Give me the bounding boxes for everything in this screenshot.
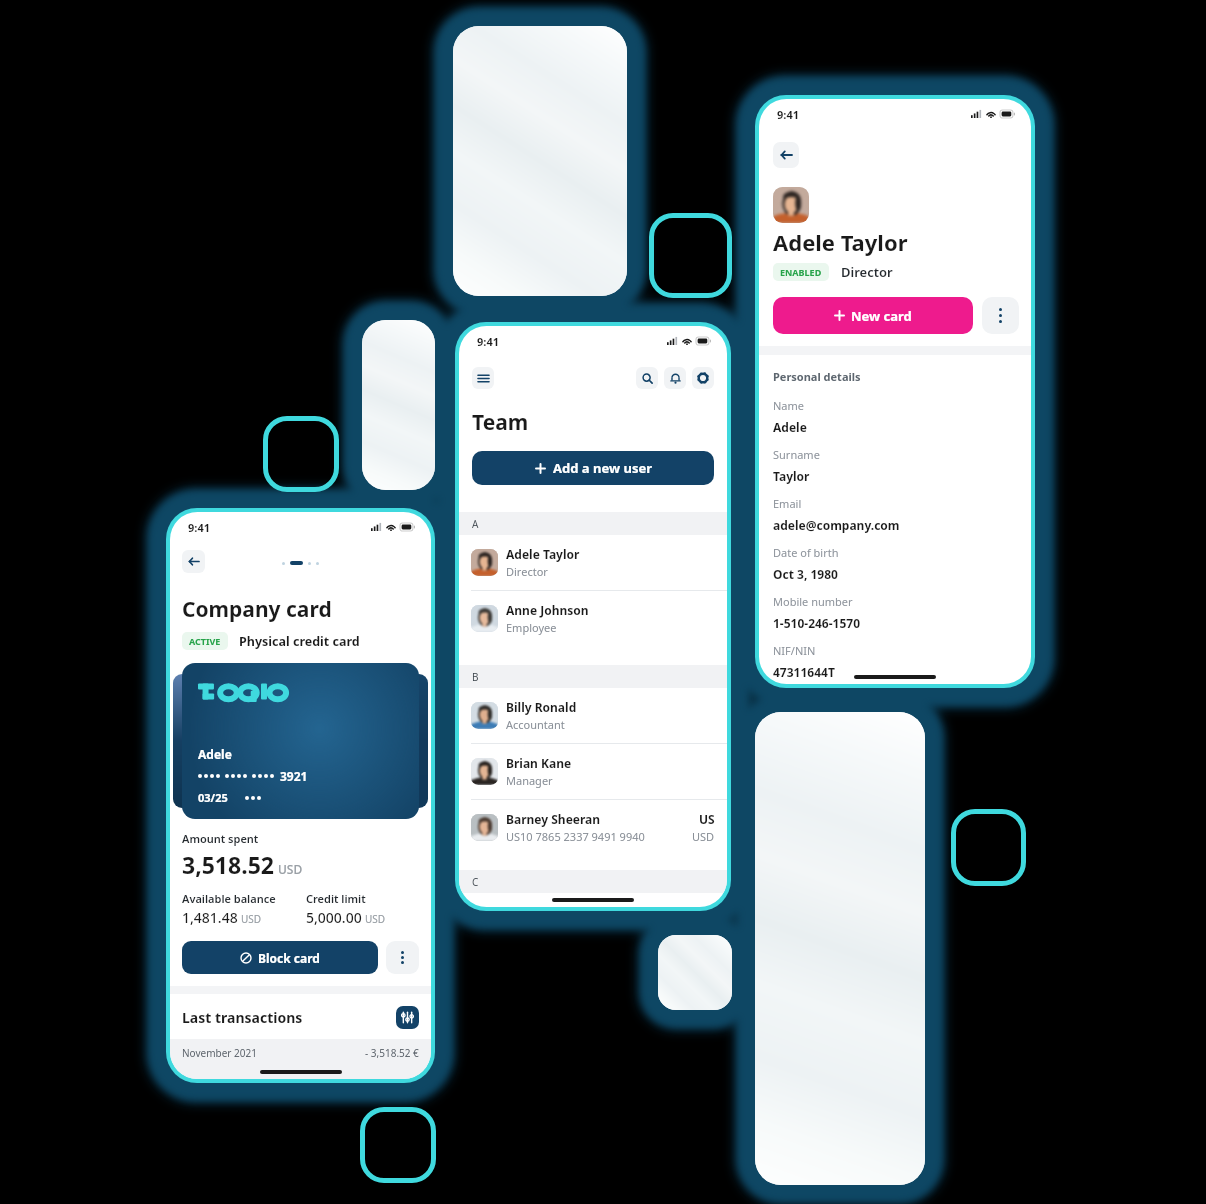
staticText: Name (773, 398, 805, 413)
staticText: Taylor (773, 468, 810, 484)
staticText: 9:41 (188, 520, 210, 535)
staticText: Manager (506, 773, 553, 788)
staticText: Personal details (773, 369, 861, 384)
staticText: 1-510-246-1570 (773, 615, 861, 631)
button[interactable]: Filter (396, 1006, 419, 1029)
staticText: Billy Ronald (506, 699, 577, 715)
staticText: Director (506, 564, 548, 579)
button[interactable]: Brian Kane (471, 744, 715, 799)
staticText: Mobile number (773, 594, 853, 609)
staticText: Date of birth (773, 545, 839, 560)
staticText: November 2021 (182, 1046, 257, 1060)
staticText: Company card (182, 595, 332, 624)
staticText: Oct 3, 1980 (773, 566, 838, 582)
staticText: Amount spent (182, 831, 259, 846)
button[interactable]: Adele Taylor (471, 535, 715, 590)
staticText: ENABLED (780, 266, 822, 278)
button[interactable]: Billy Ronald (471, 688, 715, 743)
button[interactable]: Anne Johnson (471, 591, 715, 646)
staticText: A (472, 517, 479, 531)
staticText: 1,481.48 (182, 908, 238, 927)
staticText: Adele (198, 746, 232, 762)
staticText: Add a new user (553, 459, 652, 477)
staticText: Employee (506, 620, 557, 635)
button[interactable]: Block card (182, 941, 378, 974)
staticText: - 3,518.52 € (365, 1046, 419, 1060)
staticText: Credit limit (306, 891, 366, 906)
button[interactable]: Back (773, 142, 799, 168)
button[interactable]: Back (182, 550, 205, 573)
button[interactable]: Settings (692, 367, 714, 389)
button[interactable]: New card (773, 297, 973, 334)
staticText: 9:41 (477, 334, 499, 349)
staticText: New card (851, 307, 912, 325)
staticText: US10 7865 2337 9491 9940 (506, 829, 645, 844)
staticText: Anne Johnson (506, 602, 589, 618)
staticText: C (472, 875, 479, 889)
staticText: 3,518.52 (182, 849, 274, 880)
staticText: USD (278, 861, 303, 877)
staticText: Adele (773, 419, 807, 435)
staticText: 9:41 (777, 107, 799, 122)
button[interactable]: Menu (472, 367, 494, 389)
staticText: Accountant (506, 717, 565, 732)
staticText: Email (773, 496, 802, 511)
staticText: Adele Taylor (773, 227, 908, 257)
staticText: Physical credit card (239, 633, 360, 650)
staticText: Brian Kane (506, 755, 572, 771)
staticText: Surname (773, 447, 820, 462)
staticText: Director (841, 263, 893, 281)
button[interactable]: Notifications (664, 367, 686, 389)
staticText: US (699, 811, 715, 827)
staticText: Barney Sheeran (506, 811, 601, 827)
staticText: 03/25 (198, 790, 228, 805)
button[interactable]: Search (636, 367, 658, 389)
staticText: Available balance (182, 891, 276, 906)
button[interactable]: More options (386, 941, 419, 974)
staticText: Block card (258, 950, 320, 966)
staticText: USD (365, 912, 386, 926)
staticText: NIF/NIN (773, 643, 816, 658)
staticText: B (472, 670, 479, 684)
staticText: 3921 (280, 768, 308, 784)
staticText: 5,000.00 (306, 908, 362, 927)
button[interactable]: Add a new user (472, 451, 714, 485)
staticText: adele@company.com (773, 517, 900, 533)
button[interactable]: More options (982, 297, 1019, 334)
staticText: ACTIVE (189, 635, 221, 647)
staticText: 47311644T (773, 664, 835, 680)
button[interactable]: Barney Sheeran (471, 800, 715, 855)
staticText: Last transactions (182, 1008, 303, 1027)
staticText: USD (692, 829, 715, 844)
staticText: USD (241, 912, 262, 926)
staticText: Adele Taylor (506, 546, 580, 562)
staticText: Team (472, 408, 529, 437)
